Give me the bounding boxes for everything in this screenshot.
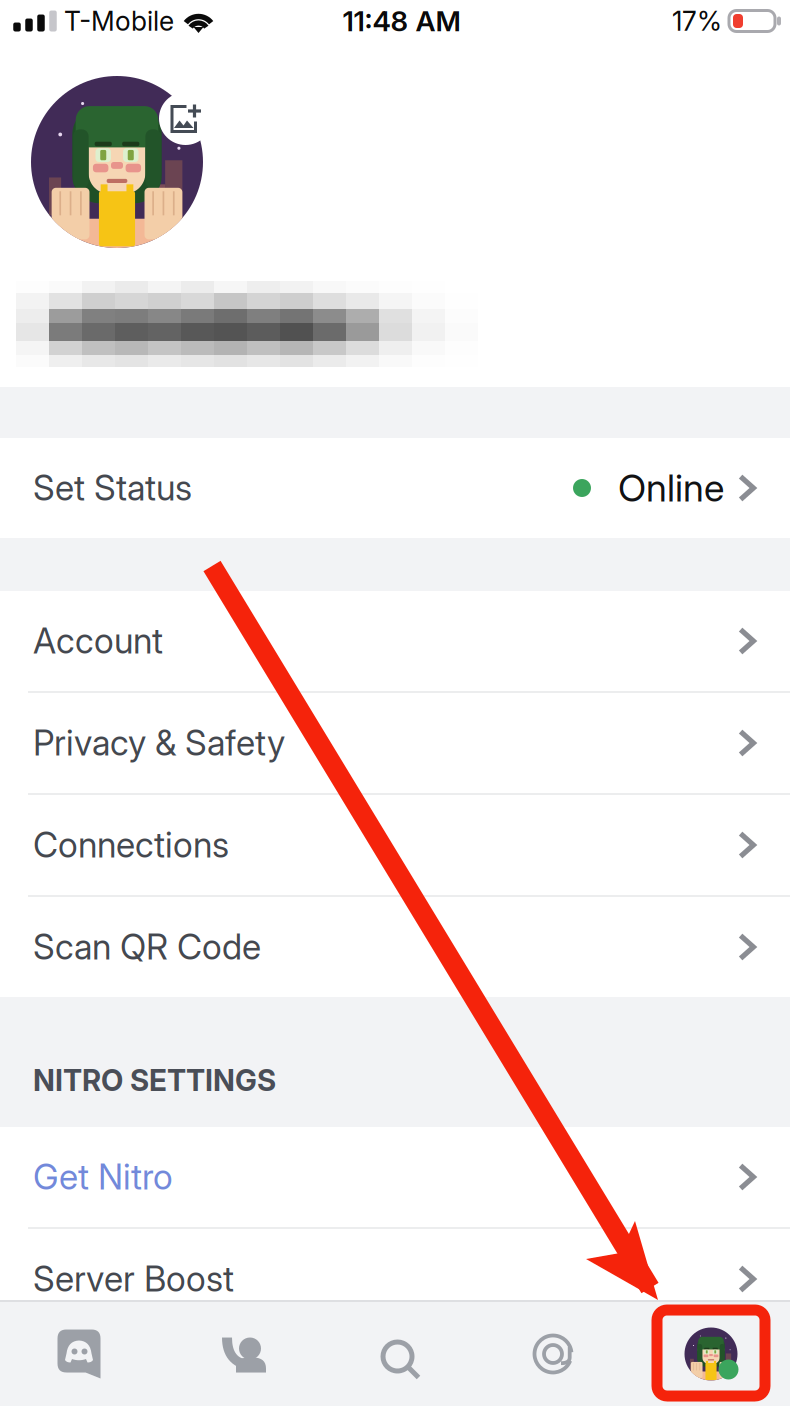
staticText: Scan QR Code — [33, 926, 261, 968]
staticText: 17% — [672, 5, 722, 37]
staticText: Account — [33, 620, 163, 662]
button[interactable]: Scan QR Code — [0, 897, 790, 997]
button[interactable]: Account — [0, 591, 790, 691]
staticText: T-Mobile — [64, 5, 174, 37]
staticText: Connections — [33, 824, 229, 866]
button[interactable]: Mentions — [474, 1302, 632, 1406]
button[interactable]: Change avatar — [31, 76, 203, 248]
staticText: 11:48 AM — [342, 4, 460, 38]
staticText: Get Nitro — [33, 1156, 173, 1198]
button[interactable]: Search — [316, 1302, 474, 1406]
button[interactable]: Set Status — [0, 438, 790, 538]
button[interactable]: Server Boost — [0, 1229, 790, 1300]
button[interactable]: Privacy & Safety — [0, 693, 790, 793]
button[interactable]: Get Nitro — [0, 1127, 790, 1227]
staticText: Online — [618, 465, 724, 511]
button[interactable]: Servers — [0, 1302, 158, 1406]
staticText: Set Status — [33, 467, 192, 509]
button[interactable]: You — [632, 1302, 790, 1406]
button[interactable]: Connections — [0, 795, 790, 895]
staticText: NITRO SETTINGS — [33, 1062, 276, 1098]
staticText: Server Boost — [33, 1258, 234, 1300]
staticText: Privacy & Safety — [33, 722, 285, 764]
button[interactable]: Friends — [158, 1302, 316, 1406]
